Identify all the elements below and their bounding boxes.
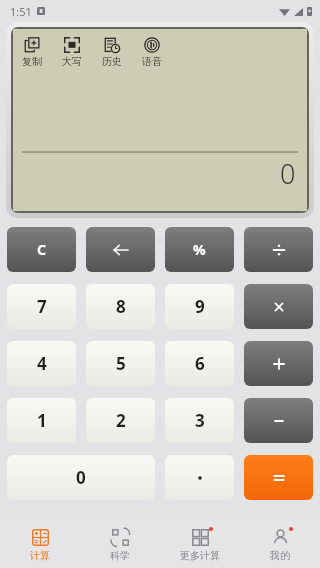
button[interactable]: % [165, 227, 234, 272]
button[interactable]: 1 [7, 398, 76, 443]
button[interactable]: Minus [244, 398, 313, 443]
staticText: 1:51 [10, 4, 32, 19]
staticText: 9 [195, 295, 205, 318]
button[interactable]: 5 [86, 341, 155, 386]
staticText: 8 [116, 295, 126, 318]
staticText: % [193, 240, 206, 259]
staticText: 6 [195, 352, 205, 375]
staticText: 3 [195, 409, 205, 432]
button[interactable]: 大写 [59, 35, 85, 70]
staticText: 0 [76, 466, 86, 489]
button[interactable]: 9 [165, 284, 234, 329]
staticText: 4 [37, 352, 47, 375]
staticText: 7 [37, 295, 47, 318]
staticText: 0 [280, 155, 296, 192]
button[interactable]: Backspace [86, 227, 155, 272]
staticText: 复制 [22, 55, 42, 68]
staticText: 大写 [62, 55, 82, 68]
button[interactable]: Multiply [244, 284, 313, 329]
button[interactable]: 4 [7, 341, 76, 386]
button[interactable]: 8 [86, 284, 155, 329]
staticText: 历史 [102, 55, 122, 68]
button[interactable]: 2 [86, 398, 155, 443]
staticText: 科学 [110, 549, 130, 562]
button[interactable]: 复制 [19, 35, 45, 70]
button[interactable]: 3 [165, 398, 234, 443]
button[interactable]: 6 [165, 341, 234, 386]
button[interactable]: Plus [244, 341, 313, 386]
button[interactable]: 7 [7, 284, 76, 329]
staticText: 2 [116, 409, 126, 432]
staticText: 我的 [270, 549, 290, 562]
button[interactable]: 语音 [139, 35, 165, 70]
staticText: 1 [37, 409, 47, 432]
button[interactable]: 历史 [99, 35, 125, 70]
staticText: 5 [116, 352, 126, 375]
button[interactable]: 科学 [80, 522, 160, 568]
staticText: 语音 [142, 55, 162, 68]
button[interactable]: 0 [7, 455, 155, 500]
staticText: 更多计算 [180, 549, 220, 562]
button[interactable]: Decimal point [165, 455, 234, 500]
button[interactable]: 我的 [240, 522, 320, 568]
staticText: C [37, 240, 46, 259]
button[interactable]: 更多计算 [160, 522, 240, 568]
button[interactable]: Divide [244, 227, 313, 272]
staticText: 计算 [30, 549, 50, 562]
button[interactable]: 计算 [0, 522, 80, 568]
button[interactable]: C [7, 227, 76, 272]
button[interactable]: Equals [244, 455, 313, 500]
